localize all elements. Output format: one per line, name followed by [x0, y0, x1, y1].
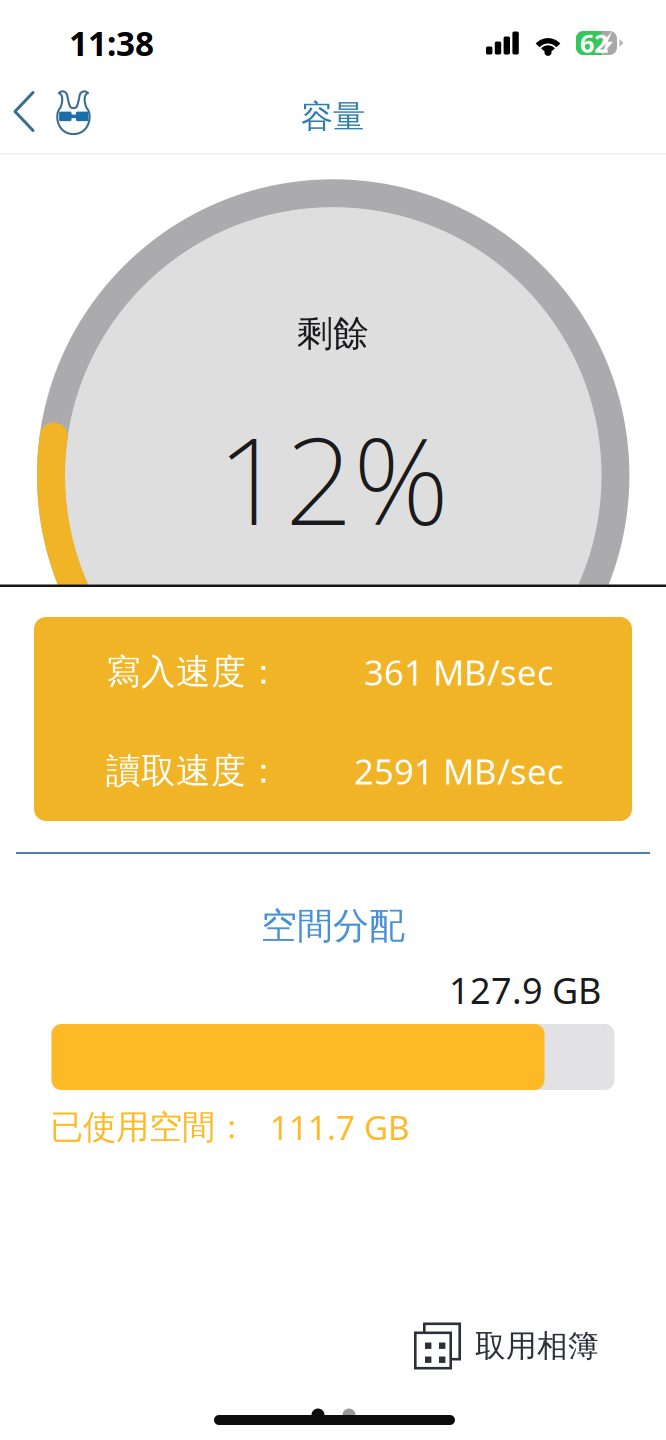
- staticText: 讀取速度：: [106, 750, 281, 792]
- staticText: 取用相簿: [475, 1327, 599, 1365]
- staticText: 361 MB/sec: [364, 649, 554, 695]
- button[interactable]: 取用相簿: [414, 1322, 599, 1369]
- staticText: 空間分配: [261, 904, 405, 948]
- staticText: 11:38: [69, 21, 154, 65]
- button[interactable]: Back: [10, 87, 42, 135]
- staticText: 剩餘: [297, 311, 369, 356]
- staticText: 容量: [301, 97, 365, 136]
- staticText: 127.9 GB: [449, 966, 601, 1014]
- staticText: 62: [580, 26, 608, 60]
- button[interactable]: Home: [54, 90, 94, 136]
- staticText: 寫入速度：: [106, 651, 281, 693]
- staticText: 2591 MB/sec: [354, 748, 564, 794]
- staticText: 已使用空間：: [50, 1107, 248, 1148]
- staticText: 12%: [217, 399, 449, 558]
- staticText: 111.7 GB: [270, 1105, 410, 1149]
